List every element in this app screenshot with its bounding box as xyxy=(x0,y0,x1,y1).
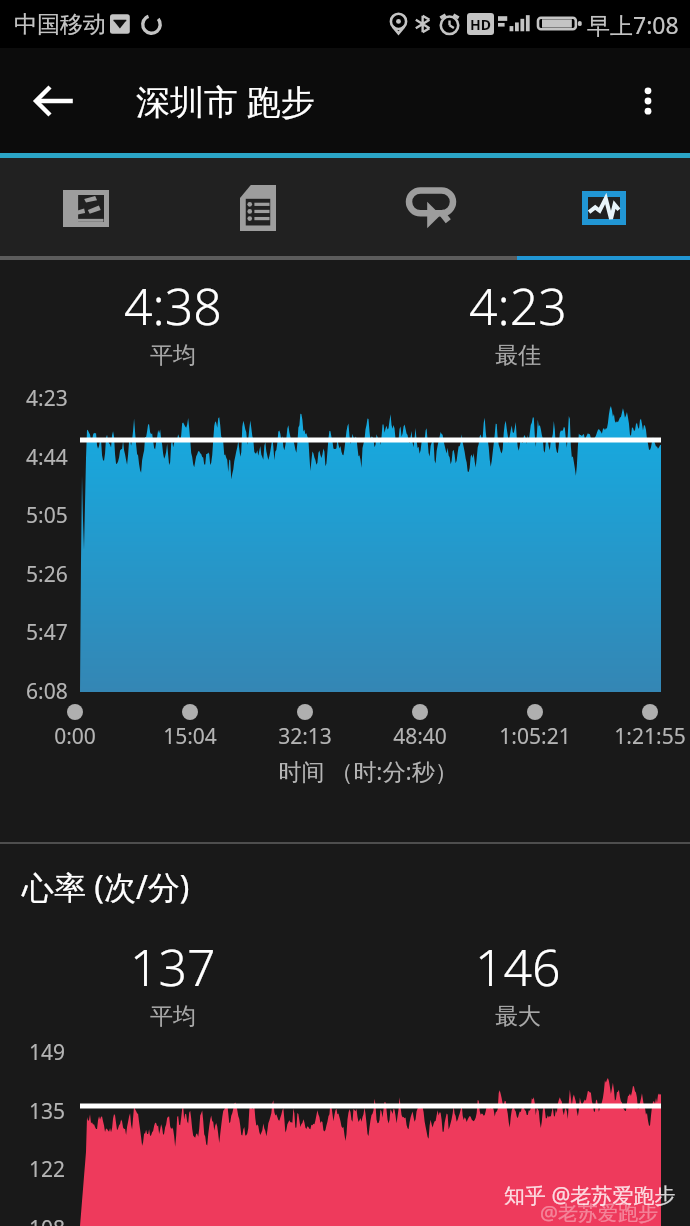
staticText: 146 xyxy=(475,933,561,1001)
button[interactable]: Charts xyxy=(517,158,690,258)
button[interactable]: More options xyxy=(616,48,680,153)
button[interactable]: Map xyxy=(0,158,172,258)
staticText: 知乎 @老苏爱跑步 xyxy=(504,1181,676,1210)
button[interactable]: Details xyxy=(172,158,344,258)
staticText: 135 xyxy=(29,1097,66,1126)
staticText: 137 xyxy=(130,933,216,1001)
staticText: HD xyxy=(470,15,491,34)
staticText: @老苏爱跑步 xyxy=(540,1199,658,1226)
staticText: 5:26 xyxy=(26,560,68,589)
staticText: 48:40 xyxy=(393,722,447,751)
staticText: 4:38 xyxy=(124,272,222,340)
button[interactable]: Laps xyxy=(344,158,517,258)
staticText: 32:13 xyxy=(278,722,332,751)
staticText: 6:08 xyxy=(26,677,68,706)
staticText: 4:44 xyxy=(26,443,68,472)
staticText: 心率 (次/分) xyxy=(22,865,190,909)
staticText: 深圳市 跑步 xyxy=(136,78,315,124)
staticText: 平均 xyxy=(150,1002,196,1031)
staticText: 中国移动 xyxy=(14,10,106,39)
staticText: 149 xyxy=(29,1038,66,1067)
staticText: 4:23 xyxy=(26,384,68,413)
staticText: 5:05 xyxy=(26,501,68,530)
staticText: 5:47 xyxy=(26,618,68,647)
staticText: 15:04 xyxy=(163,722,217,751)
staticText: 最佳 xyxy=(495,341,541,370)
staticText: 最大 xyxy=(495,1002,541,1031)
staticText: 122 xyxy=(29,1155,66,1184)
staticText: 0:00 xyxy=(54,722,96,751)
staticText: 1:05:21 xyxy=(499,722,571,751)
staticText: 4:23 xyxy=(469,272,567,340)
staticText: 时间 （时:分:秒） xyxy=(278,755,458,786)
button[interactable]: Back xyxy=(22,48,86,153)
staticText: 108 xyxy=(29,1214,66,1226)
staticText: 1:21:55 xyxy=(614,722,686,751)
staticText: 平均 xyxy=(150,341,196,370)
staticText: 早上7:08 xyxy=(587,9,679,40)
